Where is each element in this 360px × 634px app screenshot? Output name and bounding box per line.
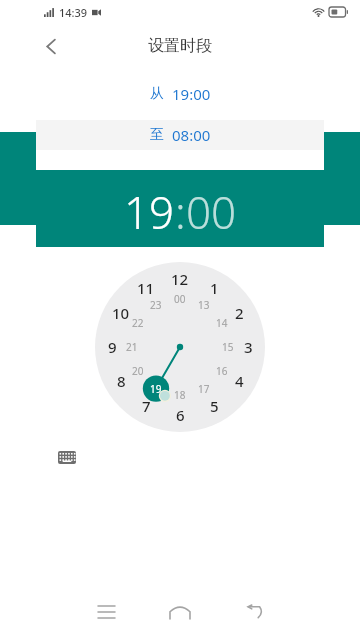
button[interactable]: Back bbox=[34, 29, 68, 63]
staticText: 13 bbox=[198, 298, 210, 312]
staticText: 23 bbox=[150, 298, 162, 312]
button[interactable]: Recent apps bbox=[86, 592, 126, 632]
button[interactable]: 至 bbox=[36, 120, 324, 150]
staticText: 8 bbox=[117, 371, 126, 391]
staticText: 5 bbox=[210, 396, 219, 416]
staticText: 1 bbox=[210, 278, 219, 298]
staticText: 4 bbox=[235, 371, 244, 391]
staticText: 08:00 bbox=[172, 125, 211, 145]
staticText: 3 bbox=[244, 337, 253, 357]
staticText: 10 bbox=[112, 303, 130, 323]
button[interactable]: 1 bbox=[95, 262, 265, 432]
staticText: 00 bbox=[174, 292, 186, 306]
staticText: 19:00 bbox=[172, 84, 211, 104]
staticText: 14 bbox=[216, 316, 228, 330]
staticText: 21 bbox=[126, 340, 138, 354]
staticText: 18 bbox=[174, 388, 186, 402]
staticText: 2 bbox=[235, 303, 244, 323]
staticText: 22 bbox=[132, 316, 144, 330]
staticText: 6 bbox=[176, 405, 185, 425]
staticText: 9 bbox=[108, 337, 117, 357]
button[interactable]: 从 bbox=[36, 67, 324, 120]
staticText: 19 bbox=[124, 182, 175, 242]
staticText: 15 bbox=[222, 340, 234, 354]
staticText: 12 bbox=[171, 269, 189, 289]
staticText: 00 bbox=[186, 182, 237, 242]
button[interactable]: Keyboard input bbox=[50, 440, 84, 474]
staticText: 7 bbox=[142, 396, 151, 416]
staticText: 从 bbox=[150, 85, 164, 103]
button[interactable]: Home bbox=[160, 592, 200, 632]
staticText: 至 bbox=[150, 126, 164, 144]
staticText: 20 bbox=[132, 364, 144, 378]
staticText: 设置时段 bbox=[148, 36, 212, 56]
staticText: 16 bbox=[216, 364, 228, 378]
staticText: 17 bbox=[198, 382, 210, 396]
staticText: : bbox=[175, 182, 186, 242]
button[interactable]: Back bbox=[234, 592, 274, 632]
staticText: 11 bbox=[137, 278, 155, 298]
staticText: 14:39 bbox=[59, 5, 88, 20]
staticText: 19 bbox=[150, 382, 162, 396]
